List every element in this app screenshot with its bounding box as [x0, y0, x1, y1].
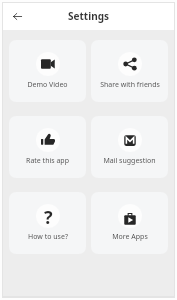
button[interactable]: Share with friends — [91, 40, 168, 102]
button[interactable]: Rate this app — [9, 116, 86, 178]
staticText: More Apps — [112, 232, 148, 242]
staticText: Share with friends — [100, 80, 160, 90]
button[interactable]: Back — [4, 3, 31, 30]
staticText: ? — [44, 205, 53, 228]
staticText: How to use? — [28, 232, 68, 242]
staticText: Mail suggestion — [103, 156, 156, 166]
button[interactable]: Mail suggestion — [91, 116, 168, 178]
button[interactable]: ? — [9, 192, 86, 254]
button[interactable]: Demo Video — [9, 40, 86, 102]
staticText: Settings — [3, 9, 174, 23]
staticText: Demo Video — [27, 80, 68, 90]
staticText: Rate this app — [26, 156, 69, 166]
button[interactable]: More Apps — [91, 192, 168, 254]
